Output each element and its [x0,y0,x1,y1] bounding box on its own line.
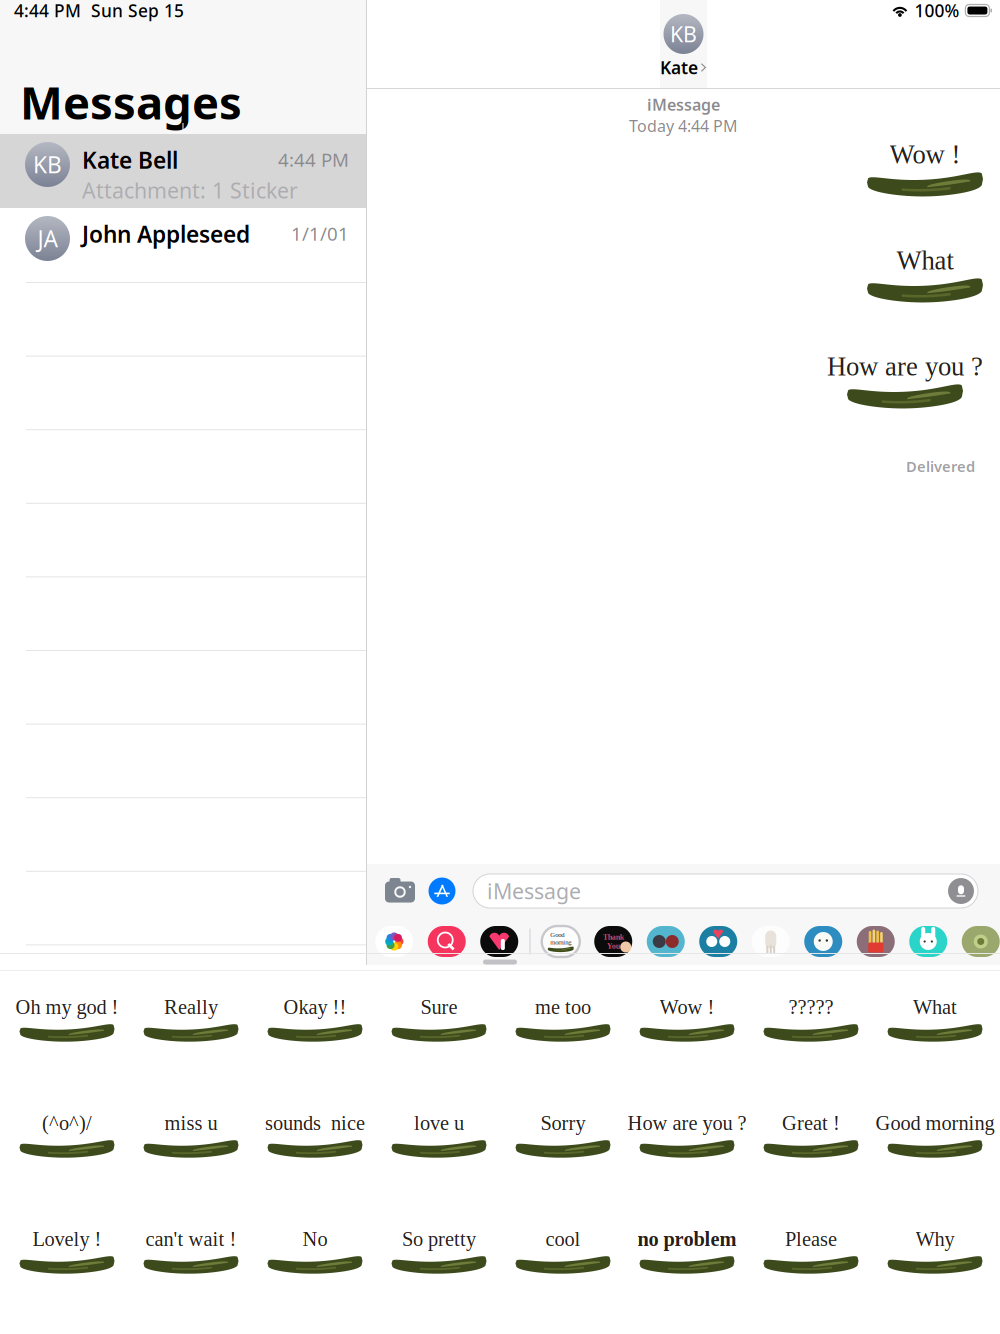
button[interactable]: Lovely ! [5,1230,129,1334]
button[interactable]: App Store [425,876,459,906]
staticText: Lovely ! [32,1228,101,1250]
button[interactable]: Really [129,998,253,1114]
button[interactable]: Fries stickers [849,923,902,959]
button[interactable]: Cat stickers [692,923,744,959]
staticText: miss u [164,1112,217,1134]
staticText: Good morning [550,931,571,946]
staticText: John Appleseed [82,219,250,249]
button[interactable]: iMessage [473,874,978,908]
staticText: love u [414,1112,464,1134]
staticText: iMessage [487,877,581,905]
button[interactable]: Great ! [749,1114,873,1230]
button[interactable]: Thank you stickers [587,923,639,959]
button[interactable]: Images [420,923,473,959]
button[interactable]: KB [660,14,707,79]
staticText: Good morning [875,1112,994,1134]
button[interactable]: Bunny stickers [902,923,954,959]
staticText: me too [535,996,591,1018]
button[interactable]: Take photo [383,876,417,906]
staticText: Wow ! [659,996,714,1018]
staticText: KB [33,149,62,179]
button[interactable]: Couple stickers [639,923,692,959]
button[interactable]: cool [501,1230,625,1334]
button[interactable]: Blob stickers [797,923,849,959]
button[interactable]: Photos [368,923,420,959]
staticText: iMessage [647,94,720,115]
button[interactable]: Wow ! [625,998,749,1114]
button[interactable]: What [873,998,997,1114]
staticText: Messages [20,72,242,132]
staticText: JA [37,223,57,253]
button[interactable]: Please [749,1230,873,1334]
button[interactable]: No [253,1230,377,1334]
button[interactable]: So pretty [377,1230,501,1334]
button[interactable]: KB [0,134,366,208]
staticText: ????? [788,996,833,1018]
staticText: Kate [660,56,698,79]
staticText: Delivered [906,456,975,476]
button[interactable]: JA [0,208,366,282]
button[interactable]: me too [501,998,625,1114]
staticText: Today 4:44 PM [629,115,738,136]
button[interactable]: Squid stickers [744,923,797,959]
button[interactable]: Oh my god ! [5,998,129,1114]
staticText: Sure [420,996,457,1018]
button[interactable]: Sorry [501,1114,625,1230]
staticText: Great ! [782,1112,840,1134]
button[interactable]: Why [873,1230,997,1334]
button[interactable]: can't wait ! [129,1230,253,1334]
staticText: Why [915,1228,954,1250]
button[interactable]: no problem [625,1230,749,1334]
staticText: Wow ! [889,140,960,169]
staticText: sounds nice [265,1112,365,1134]
staticText: How are you ? [627,1112,746,1134]
staticText: You [607,941,620,950]
button[interactable]: Good morning [873,1114,997,1230]
button[interactable]: miss u [129,1114,253,1230]
button[interactable]: (^o^)/ [5,1114,129,1230]
button[interactable]: More stickers [954,923,1000,959]
staticText: 1/1/01 [291,221,349,246]
staticText: Oh my god ! [15,996,118,1018]
staticText: 100% [914,0,959,22]
staticText: What [896,246,953,275]
staticText: Please [785,1228,837,1250]
staticText: Really [164,996,218,1018]
staticText: no problem [637,1228,736,1250]
button[interactable]: Sure [377,998,501,1114]
button[interactable]: Cucumber stickers [534,923,587,959]
staticText: No [302,1228,327,1250]
staticText: Kate Bell [82,145,178,175]
staticText: Attachment: 1 Sticker [82,176,298,204]
staticText: can't wait ! [145,1228,236,1250]
button[interactable]: How are you ? [625,1114,749,1230]
button[interactable]: Digital Touch [473,923,525,959]
button[interactable]: ????? [749,998,873,1114]
staticText: (^o^)/ [42,1112,92,1134]
staticText: Sorry [540,1112,585,1134]
staticText: How are you ? [827,352,983,381]
staticText: cool [545,1228,580,1250]
staticText: 4:44 PM [14,0,81,22]
staticText: KB [670,20,697,48]
staticText: Okay !! [283,996,346,1018]
staticText: What [913,996,957,1018]
button[interactable]: Okay !! [253,998,377,1114]
staticText: Sun Sep 15 [91,0,184,22]
button[interactable]: love u [377,1114,501,1230]
button[interactable]: sounds nice [253,1114,377,1230]
staticText: So pretty [402,1228,476,1250]
staticText: Thank [603,933,624,941]
staticText: 4:44 PM [278,147,349,172]
